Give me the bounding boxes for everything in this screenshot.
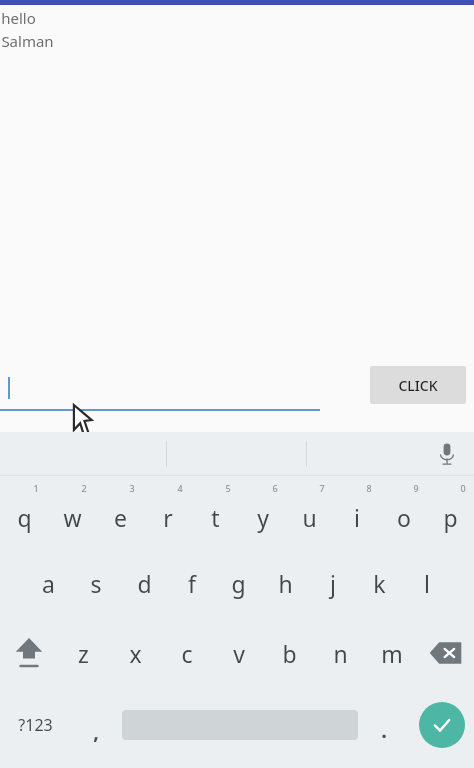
staticText: b bbox=[282, 638, 297, 669]
button[interactable]: h bbox=[262, 548, 309, 618]
staticText: e bbox=[114, 502, 127, 533]
button[interactable]: 9 bbox=[380, 476, 427, 548]
staticText: v bbox=[233, 638, 245, 669]
staticText: q bbox=[17, 502, 32, 533]
staticText: a bbox=[42, 568, 55, 599]
staticText: , bbox=[93, 718, 99, 745]
button[interactable]: 1 bbox=[0, 476, 48, 548]
staticText: f bbox=[188, 568, 196, 599]
button[interactable]: 5 bbox=[192, 476, 239, 548]
staticText: u bbox=[302, 502, 317, 533]
staticText: CLICK bbox=[398, 376, 438, 395]
button[interactable]: f bbox=[168, 548, 215, 618]
staticText: p bbox=[443, 502, 458, 533]
button[interactable]: 0 bbox=[427, 476, 474, 548]
staticText: 5 bbox=[225, 482, 231, 494]
button[interactable]: l bbox=[403, 548, 450, 618]
staticText: s bbox=[90, 568, 102, 599]
button[interactable]: 4 bbox=[144, 476, 192, 548]
button[interactable]: n bbox=[315, 618, 366, 688]
button[interactable]: j bbox=[309, 548, 356, 618]
staticText: 7 bbox=[319, 482, 325, 494]
button[interactable]: m bbox=[366, 618, 417, 688]
button[interactable]: Voice input bbox=[430, 437, 464, 471]
staticText: n bbox=[333, 638, 348, 669]
button[interactable]: a bbox=[24, 548, 72, 618]
button[interactable]: c bbox=[161, 618, 213, 688]
staticText: y bbox=[257, 502, 269, 533]
button[interactable]: Backspace bbox=[417, 618, 474, 688]
staticText: . bbox=[381, 717, 387, 744]
button[interactable] bbox=[0, 375, 320, 411]
staticText: k bbox=[373, 568, 386, 599]
staticText: Salman bbox=[1, 31, 54, 51]
button[interactable]: , bbox=[70, 690, 122, 760]
staticText: hello bbox=[1, 8, 36, 28]
staticText: 9 bbox=[413, 482, 419, 494]
staticText: d bbox=[137, 568, 152, 599]
button[interactable]: v bbox=[213, 618, 264, 688]
staticText: i bbox=[354, 502, 360, 533]
staticText: r bbox=[163, 502, 173, 533]
button[interactable]: Shift bbox=[0, 618, 57, 688]
staticText: 2 bbox=[81, 482, 87, 494]
staticText: h bbox=[278, 568, 293, 599]
staticText: 1 bbox=[33, 482, 39, 494]
button[interactable]: x bbox=[109, 618, 161, 688]
staticText: m bbox=[381, 638, 403, 669]
button[interactable]: . bbox=[358, 690, 410, 760]
button[interactable]: s bbox=[72, 548, 120, 618]
button[interactable]: 7 bbox=[286, 476, 333, 548]
button[interactable]: CLICK bbox=[370, 366, 466, 404]
staticText: l bbox=[424, 568, 430, 599]
button[interactable]: 3 bbox=[96, 476, 144, 548]
button[interactable]: 6 bbox=[239, 476, 286, 548]
staticText: t bbox=[211, 502, 220, 533]
staticText: 3 bbox=[129, 482, 135, 494]
staticText: x bbox=[129, 638, 142, 669]
staticText: z bbox=[78, 638, 89, 669]
staticText: j bbox=[330, 568, 336, 599]
button[interactable]: ?123 bbox=[0, 690, 70, 760]
button[interactable]: 2 bbox=[48, 476, 96, 548]
staticText: 4 bbox=[177, 482, 183, 494]
button[interactable]: z bbox=[57, 618, 109, 688]
staticText: c bbox=[181, 638, 193, 669]
button[interactable]: d bbox=[120, 548, 168, 618]
staticText: o bbox=[397, 502, 411, 533]
staticText: g bbox=[231, 568, 246, 599]
button[interactable]: g bbox=[215, 548, 262, 618]
button[interactable]: 8 bbox=[333, 476, 380, 548]
staticText: 6 bbox=[272, 482, 278, 494]
staticText: 8 bbox=[366, 482, 372, 494]
staticText: ?123 bbox=[18, 714, 53, 736]
button[interactable]: Enter bbox=[410, 690, 474, 760]
staticText: w bbox=[63, 502, 82, 533]
staticText: 0 bbox=[460, 482, 466, 494]
button[interactable]: b bbox=[264, 618, 315, 688]
button[interactable]: k bbox=[356, 548, 403, 618]
